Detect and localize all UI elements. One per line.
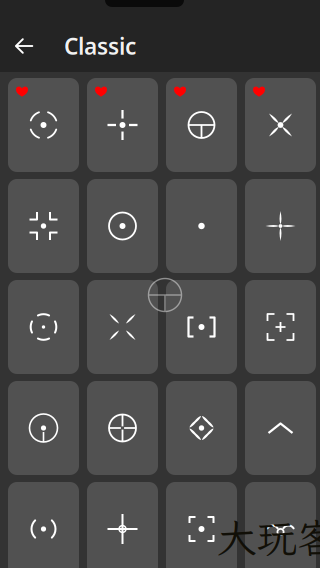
button[interactable]: Back <box>2 24 46 68</box>
button[interactable]: Crosshair style 13 <box>8 381 79 475</box>
button[interactable]: Crosshair style 20 <box>245 482 316 568</box>
button[interactable]: Crosshair style 3 <box>166 78 237 172</box>
button[interactable]: Crosshair style 1 <box>8 78 79 172</box>
staticText: 大玩客 <box>217 511 320 564</box>
button[interactable]: Crosshair style 5 <box>8 179 79 273</box>
button[interactable]: Crosshair style 17 <box>8 482 79 568</box>
button[interactable]: Crosshair style 2 <box>87 78 158 172</box>
button[interactable]: Crosshair style 10 <box>87 280 158 374</box>
button[interactable]: Crosshair style 8 <box>245 179 316 273</box>
button[interactable]: Crosshair style 16 <box>245 381 316 475</box>
button[interactable]: Crosshair style 7 <box>166 179 237 273</box>
button[interactable]: Crosshair style 19 <box>166 482 237 568</box>
button[interactable]: Crosshair style 11 <box>166 280 237 374</box>
button[interactable]: Crosshair style 9 <box>8 280 79 374</box>
button[interactable]: Crosshair style 6 <box>87 179 158 273</box>
button[interactable]: Crosshair style 15 <box>166 381 237 475</box>
button[interactable]: Crosshair style 18 <box>87 482 158 568</box>
button[interactable]: Crosshair style 14 <box>87 381 158 475</box>
button[interactable]: Crosshair style 4 <box>245 78 316 172</box>
button[interactable]: Crosshair style 12 <box>245 280 316 374</box>
staticText: Classic <box>64 31 136 61</box>
